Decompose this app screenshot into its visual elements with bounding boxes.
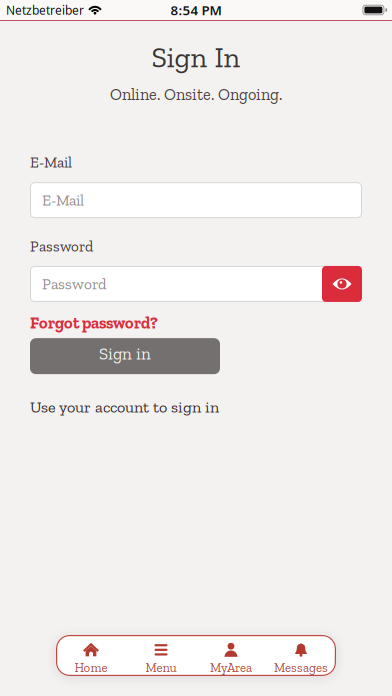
button[interactable]: Sign in xyxy=(30,338,220,374)
button[interactable]: MyArea xyxy=(196,643,266,675)
staticText: Menu xyxy=(145,660,176,675)
staticText: Sign In xyxy=(151,40,240,75)
staticText: Use your account to sign in xyxy=(30,397,219,417)
button[interactable]: Password xyxy=(30,266,362,302)
staticText: Online. Onsite. Ongoing. xyxy=(110,85,282,104)
staticText: Messages xyxy=(274,660,328,675)
staticText: MyArea xyxy=(210,660,252,675)
staticText: Netzbetreiber xyxy=(6,2,84,18)
button[interactable] xyxy=(322,266,362,302)
staticText: Password xyxy=(30,237,93,255)
button[interactable]: Home xyxy=(56,643,126,675)
staticText: Home xyxy=(74,660,107,675)
staticText: E-Mail xyxy=(42,191,84,209)
staticText: E-Mail xyxy=(30,153,72,171)
button[interactable]: E-Mail xyxy=(30,182,362,218)
button[interactable]: Menu xyxy=(126,643,196,675)
staticText: Sign in xyxy=(99,343,151,364)
button[interactable]: Messages xyxy=(266,643,336,675)
staticText: Password xyxy=(42,275,106,293)
staticText: Forgot password? xyxy=(30,313,158,333)
staticText: 8:54 PM xyxy=(170,1,221,19)
button[interactable]: Forgot password? xyxy=(30,313,158,333)
